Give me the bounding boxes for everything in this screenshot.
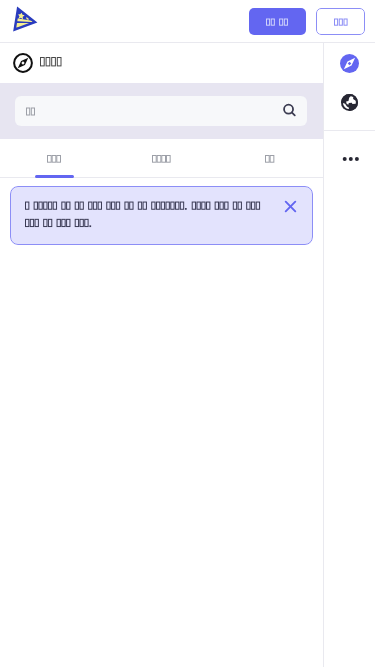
button[interactable]: Close bbox=[278, 194, 302, 218]
button[interactable] bbox=[0, 43, 323, 83]
button[interactable] bbox=[316, 8, 365, 35]
button[interactable]: App logo bbox=[11, 7, 38, 34]
button[interactable]: More options bbox=[324, 141, 375, 176]
button[interactable] bbox=[15, 96, 307, 126]
button[interactable] bbox=[0, 139, 107, 178]
button[interactable] bbox=[107, 139, 215, 178]
button[interactable]: Explore bbox=[324, 43, 375, 83]
button[interactable]: Language bbox=[324, 83, 375, 121]
button[interactable] bbox=[215, 139, 323, 178]
button[interactable] bbox=[249, 8, 306, 35]
